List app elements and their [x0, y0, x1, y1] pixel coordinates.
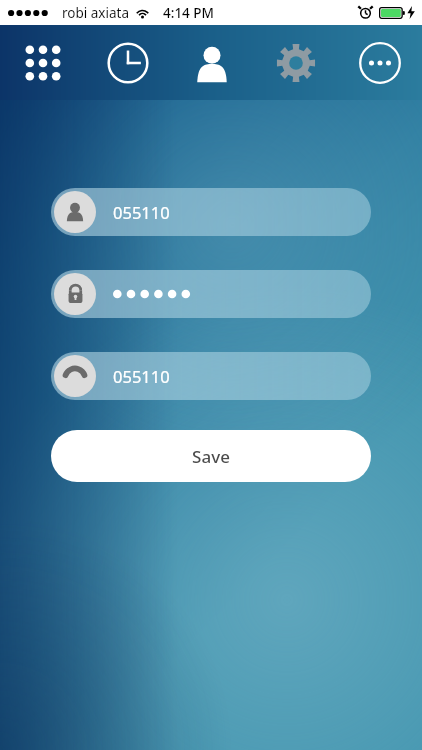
button[interactable]: Apps	[0, 25, 85, 100]
button[interactable]: 055110	[51, 352, 371, 400]
button[interactable]	[51, 270, 371, 318]
button[interactable]: Save	[51, 430, 371, 482]
staticText: robi axiata	[62, 4, 129, 22]
button[interactable]: Settings	[254, 25, 338, 100]
button[interactable]: Clock	[85, 25, 170, 100]
button[interactable]: Profile	[170, 25, 254, 100]
button[interactable]: More options	[338, 25, 422, 100]
staticText: 055110	[113, 201, 170, 223]
staticText: Save	[192, 445, 230, 468]
staticText: 055110	[113, 365, 170, 387]
staticText: 4:14 PM	[163, 4, 214, 22]
button[interactable]: 055110	[51, 188, 371, 236]
